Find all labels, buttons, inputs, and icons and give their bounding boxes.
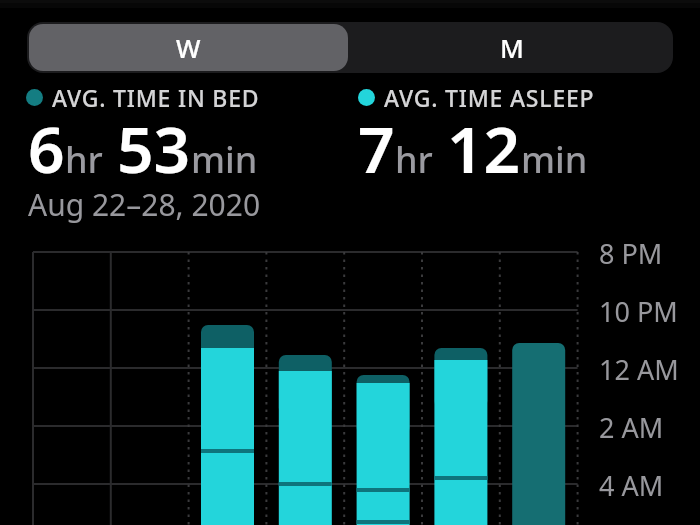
staticText: min <box>191 135 258 184</box>
staticText: AVG. TIME IN BED <box>52 82 260 113</box>
staticText: hr <box>65 135 103 184</box>
staticText: Aug 22–28, 2020 <box>28 184 261 225</box>
staticText: W <box>176 30 201 65</box>
staticText: 12 <box>447 105 521 192</box>
staticText: 2 AM <box>599 409 664 446</box>
button[interactable]: W <box>29 24 348 71</box>
staticText: 4 AM <box>599 467 664 504</box>
staticText: 7 <box>358 105 395 192</box>
staticText: 6 <box>28 105 65 192</box>
staticText: 8 PM <box>599 235 663 272</box>
staticText: 53 <box>117 105 191 192</box>
button[interactable]: M <box>350 22 673 73</box>
staticText: min <box>521 135 588 184</box>
staticText: 12 AM <box>599 351 679 388</box>
staticText: hr <box>395 135 433 184</box>
staticText: M <box>500 30 524 65</box>
staticText: AVG. TIME ASLEEP <box>384 82 595 113</box>
staticText: 10 PM <box>599 293 678 330</box>
